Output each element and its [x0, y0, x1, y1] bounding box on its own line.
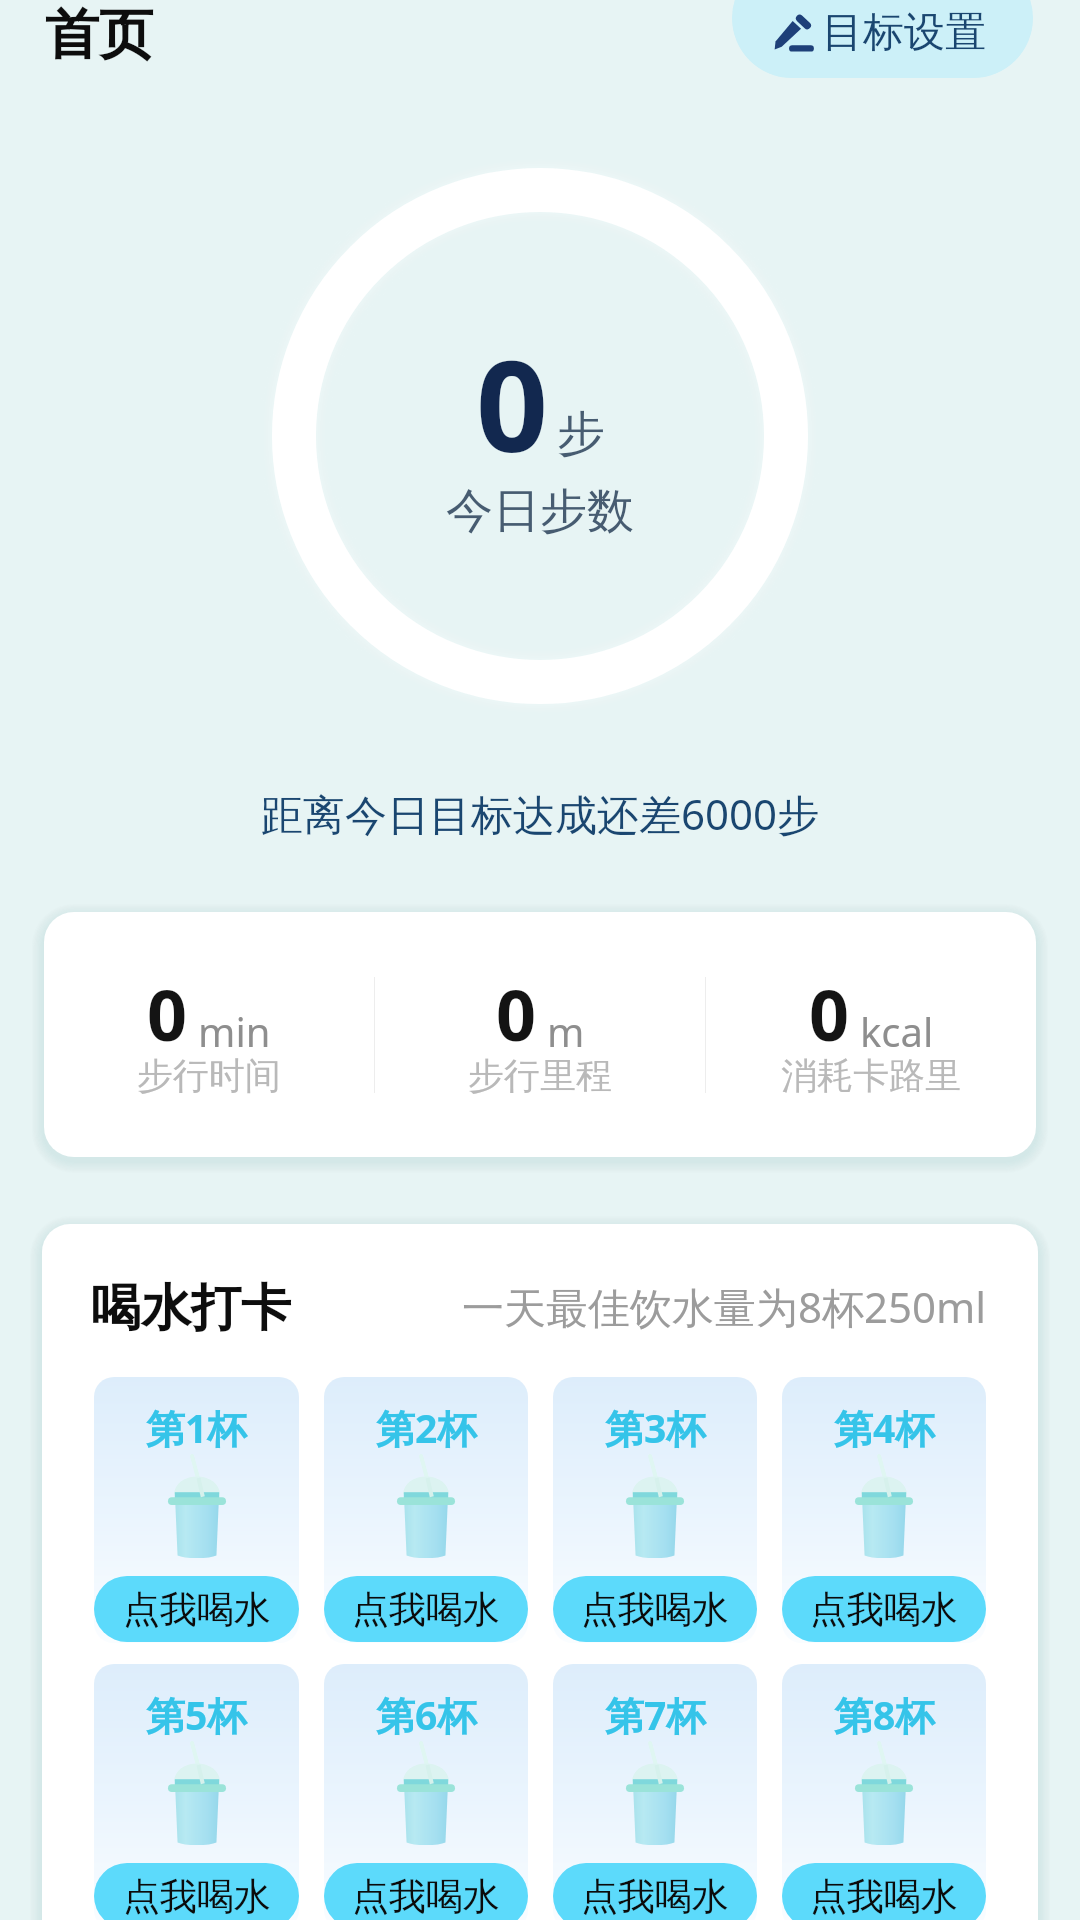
button[interactable]: 点我喝水 [94, 1863, 299, 1920]
staticText: min [198, 1004, 271, 1058]
button[interactable]: 点我喝水 [324, 1863, 528, 1920]
button[interactable]: 第4杯 [782, 1377, 986, 1643]
button[interactable]: 第2杯 [324, 1377, 528, 1643]
button[interactable]: 点我喝水 [782, 1576, 986, 1642]
staticText: 步行时间 [137, 1053, 281, 1098]
button[interactable]: 点我喝水 [553, 1576, 757, 1642]
staticText: 第8杯 [834, 1688, 935, 1741]
staticText: 第2杯 [376, 1401, 477, 1454]
button[interactable]: 第3杯 [553, 1377, 757, 1643]
staticText: 0 [147, 966, 188, 1061]
other: 目标设置 [772, 16, 816, 57]
staticText: 第7杯 [605, 1688, 706, 1741]
staticText: m [547, 1004, 585, 1058]
staticText: 距离今日目标达成还差6000步 [261, 785, 820, 842]
staticText: 喝水打卡 [91, 1277, 291, 1340]
staticText: 第6杯 [376, 1688, 477, 1741]
staticText: 点我喝水 [581, 1873, 729, 1920]
staticText: 今日步数 [446, 482, 634, 541]
staticText: 第1杯 [146, 1401, 247, 1454]
staticText: 目标设置 [822, 7, 986, 59]
staticText: 点我喝水 [123, 1586, 271, 1633]
button[interactable]: 第1杯 [94, 1377, 299, 1643]
button[interactable]: 点我喝水 [553, 1863, 757, 1920]
staticText: 首页 [45, 1, 153, 69]
staticText: 点我喝水 [810, 1873, 958, 1920]
staticText: 0 [809, 966, 850, 1061]
staticText: kcal [860, 1004, 934, 1058]
staticText: 第4杯 [834, 1401, 935, 1454]
staticText: 0 [476, 317, 549, 489]
button[interactable]: 第8杯 [782, 1664, 986, 1920]
staticText: 点我喝水 [352, 1873, 500, 1920]
button[interactable]: 第5杯 [94, 1664, 299, 1920]
staticText: 点我喝水 [810, 1586, 958, 1633]
staticText: 消耗卡路里 [781, 1053, 961, 1098]
staticText: 第3杯 [605, 1401, 706, 1454]
button[interactable]: 点我喝水 [782, 1863, 986, 1920]
staticText: 点我喝水 [123, 1873, 271, 1920]
button[interactable]: 点我喝水 [94, 1576, 299, 1642]
button[interactable]: 第7杯 [553, 1664, 757, 1920]
staticText: 步行里程 [468, 1053, 612, 1098]
button[interactable]: 第6杯 [324, 1664, 528, 1920]
staticText: 第5杯 [146, 1688, 247, 1741]
button[interactable]: 点我喝水 [324, 1576, 528, 1642]
staticText: 步 [557, 404, 605, 464]
staticText: 一天最佳饮水量为8杯250ml [462, 1278, 987, 1335]
button[interactable]: 目标设置 [732, 0, 1033, 78]
staticText: 点我喝水 [581, 1586, 729, 1633]
staticText: 点我喝水 [352, 1586, 500, 1633]
staticText: 0 [496, 966, 537, 1061]
